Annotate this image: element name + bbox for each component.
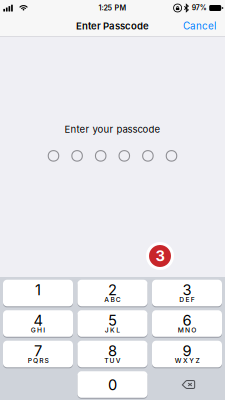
button[interactable]: 0	[77, 371, 147, 398]
button[interactable]: Cancel	[174, 16, 225, 36]
button[interactable]: 8	[77, 341, 147, 367]
staticText: TUV	[104, 357, 121, 365]
staticText: Enter your passcode	[64, 123, 160, 135]
staticText: Cancel	[183, 20, 216, 32]
staticText: 3	[182, 281, 191, 299]
staticText: ABC	[104, 296, 121, 304]
staticText: 97%	[192, 4, 207, 12]
button[interactable]: 1	[3, 280, 73, 306]
button[interactable]: 3	[152, 280, 222, 306]
button[interactable]: 6	[152, 310, 222, 337]
staticText: 5	[108, 311, 117, 329]
button[interactable]: 7	[3, 341, 73, 367]
staticText: Enter Passcode	[76, 20, 149, 32]
staticText: 9	[182, 342, 191, 360]
staticText: 6	[182, 311, 191, 329]
button[interactable]: 9	[152, 341, 222, 367]
staticText: 3	[155, 247, 164, 265]
button[interactable]: 2	[77, 280, 147, 306]
staticText: JKL	[105, 326, 120, 334]
staticText: WXYZ	[175, 357, 199, 365]
staticText: 1	[35, 281, 41, 299]
staticText: 1:25 PM	[98, 3, 126, 12]
button[interactable]: 5	[77, 310, 147, 337]
staticText: 4	[33, 311, 42, 329]
staticText: 0	[108, 376, 117, 394]
staticText: DEF	[179, 296, 195, 304]
staticText: PQRS	[28, 357, 48, 365]
button[interactable]: Delete	[152, 371, 222, 398]
staticText: 7	[34, 342, 42, 360]
staticText: 8	[108, 342, 117, 360]
staticText: 2	[108, 281, 117, 299]
staticText: GHI	[31, 326, 45, 334]
staticText: MNO	[178, 326, 196, 334]
button[interactable]: 4	[3, 310, 73, 337]
